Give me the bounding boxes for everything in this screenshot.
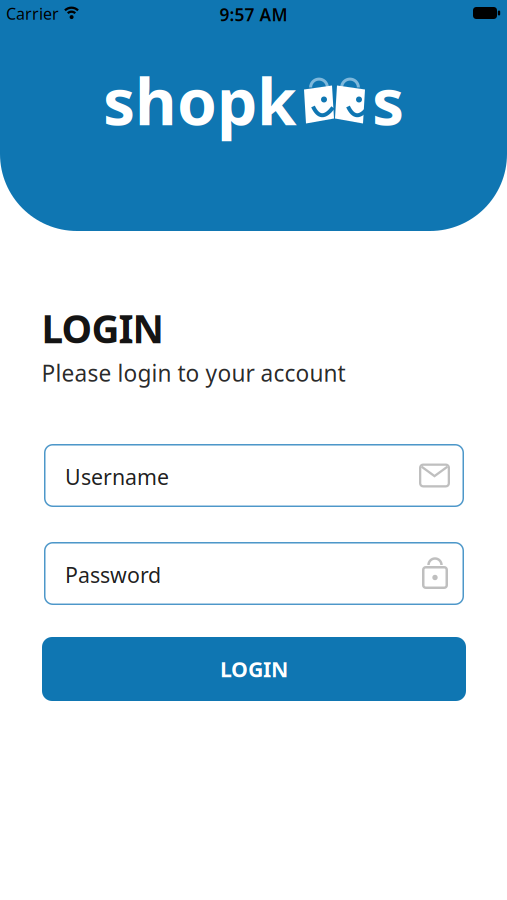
staticText: LOGIN [41, 302, 163, 354]
button[interactable]: Password [44, 542, 464, 605]
staticText: Username [65, 462, 169, 491]
staticText: Password [65, 560, 161, 589]
staticText: Carrier [6, 3, 59, 24]
staticText: Please login to your account [41, 358, 345, 388]
staticText: s [372, 58, 404, 143]
staticText: shopk [103, 58, 297, 143]
button[interactable]: Username [44, 444, 464, 507]
button[interactable]: LOGIN [42, 637, 466, 701]
staticText: 9:57 AM [219, 3, 287, 26]
staticText: LOGIN [220, 655, 288, 683]
